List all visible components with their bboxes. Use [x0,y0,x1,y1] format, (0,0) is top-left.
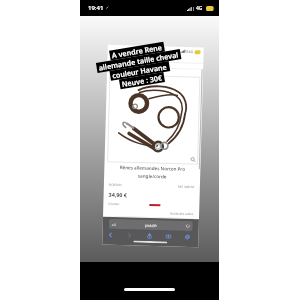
staticText: Neuve : 30€ [121,72,163,89]
staticText: 19:41 [88,4,104,12]
staticText: NORTON [109,183,122,187]
staticText: ᴀA [112,222,117,227]
staticText: Couleur [108,202,120,206]
staticText: couleur Havane [111,61,168,80]
staticText: Rênes allemandes Norton Pro sangle/corde [109,164,195,180]
staticText: A vendre Rene [111,42,163,60]
button[interactable]: A vendre Rene [87,38,191,94]
button[interactable]: Back [107,232,114,238]
button[interactable]: Forward [126,232,133,238]
staticText: Réf. 308104 [178,185,195,189]
staticText: 4G [189,49,194,54]
button[interactable]: ᴀA [109,219,193,231]
button[interactable]: Share [146,233,153,239]
staticText: Guide des tailles [170,211,194,216]
staticText: allemande taille cheval [98,49,179,73]
staticText: 4G [196,5,203,12]
button[interactable]: Bookmarks [165,233,172,240]
staticText: 34,90 € [108,191,128,198]
staticText: padd.fr [145,223,158,228]
button[interactable]: Tabs [184,234,191,240]
